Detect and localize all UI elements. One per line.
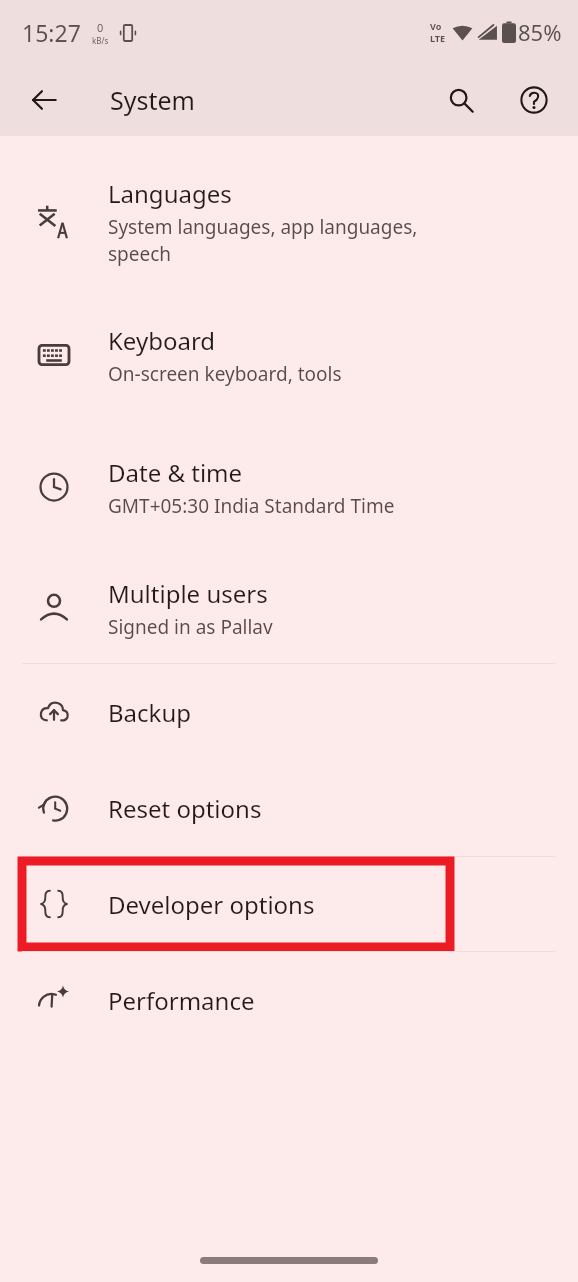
button[interactable]: Keyboard — [0, 289, 578, 421]
button[interactable]: Back — [20, 76, 68, 124]
staticText: System — [110, 83, 195, 117]
staticText: GMT+05:30 India Standard Time — [108, 493, 395, 519]
staticText: Developer options — [108, 888, 315, 921]
staticText: 0 — [97, 20, 104, 35]
button[interactable]: Backup — [0, 664, 578, 760]
staticText: Multiple users — [108, 577, 268, 610]
staticText: Reset options — [108, 792, 262, 825]
staticText: Performance — [108, 984, 255, 1017]
button[interactable]: Date & time — [0, 421, 578, 553]
staticText: System languages, app languages, speech — [108, 214, 418, 267]
staticText: Languages — [108, 177, 232, 210]
staticText: Keyboard — [108, 324, 216, 357]
staticText: kB/s — [92, 35, 109, 46]
button[interactable]: Reset options — [0, 760, 578, 856]
staticText: On-screen keyboard, tools — [108, 361, 342, 387]
staticText: Backup — [108, 696, 191, 729]
staticText: Vo — [430, 20, 442, 32]
button[interactable]: Performance — [0, 952, 578, 1048]
staticText: 15:27 — [22, 17, 81, 48]
staticText: Date & time — [108, 456, 243, 489]
button[interactable]: Multiple users — [0, 553, 578, 663]
button[interactable]: Languages — [0, 154, 578, 289]
staticText: LTE — [430, 32, 446, 44]
button[interactable]: Search — [437, 76, 485, 124]
button[interactable]: Developer options — [0, 857, 578, 951]
staticText: 85% — [518, 17, 562, 47]
staticText: Signed in as Pallav — [108, 614, 273, 640]
button[interactable]: Help — [510, 76, 558, 124]
